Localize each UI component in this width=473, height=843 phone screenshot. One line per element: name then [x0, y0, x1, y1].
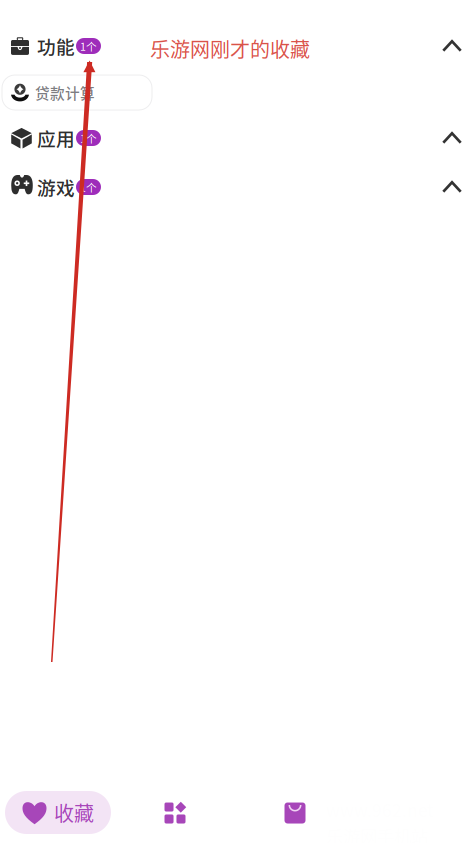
button[interactable]: 游戏	[0, 164, 473, 210]
staticText: 应用	[37, 124, 75, 151]
staticText: 1个	[80, 38, 97, 54]
button[interactable]: 商店	[269, 791, 321, 835]
staticText: 贷款计算	[35, 82, 95, 103]
staticText: 1个	[80, 130, 97, 146]
staticText: 收藏	[54, 798, 94, 827]
staticText: 乐游网刚才的收藏	[150, 34, 310, 63]
staticText: 1个	[80, 179, 97, 195]
staticText: 功能	[37, 32, 75, 59]
button[interactable]: 功能	[0, 23, 473, 69]
button[interactable]: 贷款计算	[2, 75, 152, 110]
button[interactable]: 应用	[0, 115, 473, 161]
button[interactable]: 应用	[149, 791, 201, 835]
button[interactable]: 收藏	[5, 791, 111, 834]
staticText: 游戏	[37, 173, 75, 200]
